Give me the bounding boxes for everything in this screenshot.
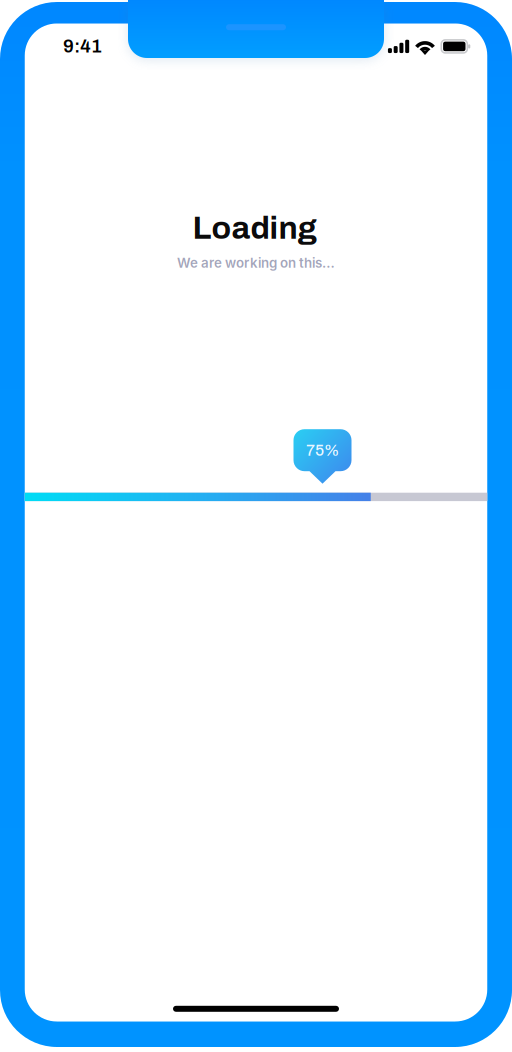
staticText: We are working on this… xyxy=(177,255,335,271)
staticText: Loading xyxy=(192,211,316,245)
staticText: 75% xyxy=(306,442,339,459)
staticText: 9:41 xyxy=(63,36,102,56)
